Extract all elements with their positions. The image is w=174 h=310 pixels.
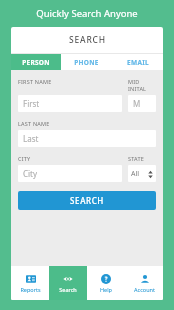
- button[interactable]: First: [18, 95, 122, 112]
- staticText: First: [23, 98, 40, 109]
- staticText: Search: [59, 286, 77, 293]
- staticText: EMAIL: [127, 58, 149, 67]
- button[interactable]: SEARCH: [18, 191, 156, 210]
- button[interactable]: PHONE: [61, 54, 112, 70]
- button[interactable]: EMAIL: [112, 54, 163, 70]
- staticText: MID INITAL: [128, 78, 156, 92]
- staticText: PERSON: [22, 58, 50, 67]
- staticText: CITY: [18, 155, 31, 162]
- staticText: City: [23, 168, 38, 179]
- button[interactable]: M: [128, 95, 156, 112]
- staticText: Account: [134, 286, 155, 293]
- button[interactable]: Account: [125, 266, 163, 300]
- button[interactable]: Last: [18, 130, 156, 147]
- staticText: Last: [23, 133, 39, 144]
- staticText: All: [131, 169, 140, 179]
- button[interactable]: All: [128, 165, 156, 182]
- button[interactable]: City: [18, 165, 122, 182]
- staticText: STATE: [128, 155, 144, 162]
- button[interactable]: Search: [49, 266, 87, 300]
- staticText: Quickly Search Anyone: [36, 7, 138, 20]
- button[interactable]: PERSON: [11, 54, 61, 70]
- staticText: FIRST NAME: [18, 78, 52, 85]
- button[interactable]: Help: [87, 266, 125, 300]
- staticText: PHONE: [74, 58, 99, 67]
- staticText: Help: [100, 286, 112, 293]
- button[interactable]: Reports: [11, 266, 49, 300]
- staticText: Reports: [20, 286, 41, 293]
- staticText: SEARCH: [70, 195, 104, 206]
- staticText: SEARCH: [69, 34, 106, 46]
- staticText: M: [133, 98, 141, 109]
- staticText: LAST NAME: [18, 120, 50, 127]
